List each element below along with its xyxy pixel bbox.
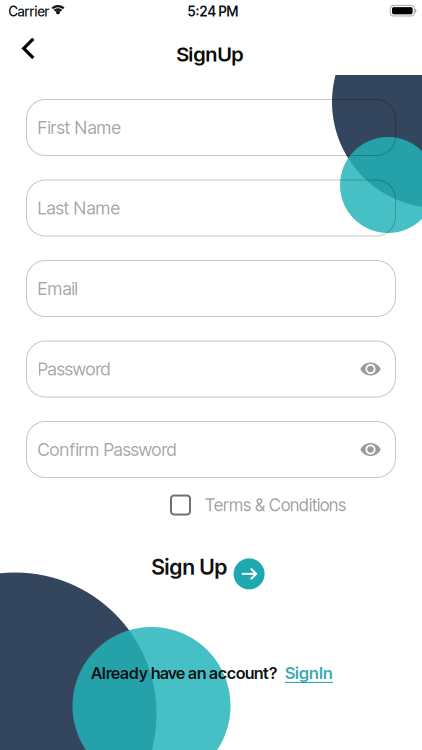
staticText: SignUp <box>176 42 243 66</box>
staticText: Already have an account? <box>91 663 277 683</box>
button[interactable]: SignIn <box>285 663 333 683</box>
button[interactable]: Terms & Conditions <box>171 495 346 515</box>
staticText: Confirm Password <box>37 439 176 460</box>
button[interactable]: Sign Up <box>155 549 267 593</box>
staticText: Email <box>37 278 77 299</box>
staticText: 5:24 PM <box>187 3 238 20</box>
staticText: Terms & Conditions <box>205 495 346 515</box>
staticText: Password <box>37 358 110 380</box>
staticText: First Name <box>37 117 120 138</box>
button[interactable]: Show password <box>358 361 382 377</box>
staticText: Carrier <box>8 3 49 20</box>
staticText: SignIn <box>285 663 333 683</box>
button[interactable]: Back <box>18 37 38 61</box>
staticText: Sign Up <box>152 554 228 580</box>
button[interactable]: Show password <box>358 441 382 457</box>
staticText: Last Name <box>37 197 119 219</box>
